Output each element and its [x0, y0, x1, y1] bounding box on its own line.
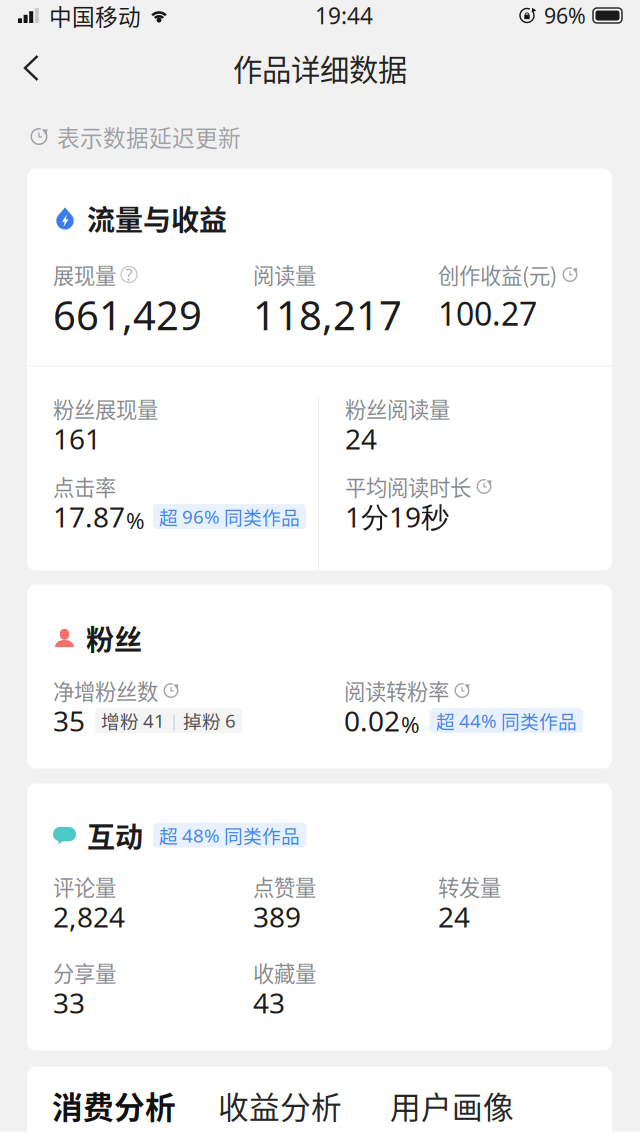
staticText: |	[170, 711, 178, 731]
staticText: 0.02	[344, 701, 400, 740]
staticText: 超	[159, 503, 182, 530]
button[interactable]: 消费分析	[27, 1069, 197, 1138]
staticText: 互动	[87, 815, 143, 855]
staticText: 44%	[459, 708, 497, 733]
staticText: 表示数据延迟更新	[57, 120, 241, 153]
staticText: 389	[253, 897, 301, 936]
staticText: 阅读转粉率	[344, 675, 449, 706]
staticText: 17.87	[53, 497, 125, 536]
staticText: 24	[345, 419, 377, 458]
staticText: 流量与收益	[87, 198, 227, 238]
staticText: 评论量	[53, 871, 116, 902]
staticText: 48%	[182, 822, 220, 848]
staticText: %	[401, 709, 420, 740]
staticText: 19:44	[315, 0, 373, 31]
staticText: 粉丝展现量	[53, 393, 158, 424]
staticText: 1分19秒	[345, 497, 449, 536]
staticText: 点击率	[53, 471, 116, 502]
staticText: 增粉	[101, 707, 143, 734]
staticText: 中国移动	[49, 0, 141, 32]
staticText: 41	[143, 708, 165, 733]
staticText: 同类作品	[220, 822, 300, 849]
staticText: 用户画像	[390, 1083, 514, 1128]
button[interactable]: 用户画像	[366, 1069, 538, 1138]
staticText: 2,824	[53, 897, 125, 936]
staticText: 点赞量	[253, 871, 316, 902]
staticText: 掉粉	[183, 707, 225, 734]
staticText: 161	[53, 419, 101, 458]
staticText: 超	[159, 822, 182, 849]
staticText: 阅读量	[253, 259, 316, 290]
staticText: 展现量	[53, 259, 116, 290]
staticText: 661,429	[53, 287, 202, 342]
button[interactable]: 收益分析	[197, 1069, 366, 1138]
staticText: 分享量	[53, 957, 116, 988]
staticText: 同类作品	[220, 503, 300, 530]
staticText: 创作收益(元)	[438, 259, 557, 290]
staticText: 100.27	[438, 291, 537, 335]
staticText: %	[126, 505, 145, 536]
staticText: 作品详细数据	[233, 47, 407, 89]
staticText: ?	[125, 264, 132, 285]
button[interactable]: Back	[0, 38, 59, 98]
staticText: 转发量	[438, 871, 501, 902]
staticText: 粉丝	[86, 618, 142, 658]
staticText: 96%	[544, 1, 586, 30]
staticText: 24	[438, 897, 470, 936]
staticText: 收益分析	[218, 1083, 342, 1128]
staticText: 超	[436, 707, 459, 734]
staticText: 43	[253, 983, 285, 1022]
staticText: 96%	[182, 504, 220, 529]
staticText: 净增粉丝数	[53, 675, 158, 706]
staticText: 33	[53, 983, 85, 1022]
staticText: 35	[53, 701, 85, 740]
staticText: 粉丝阅读量	[345, 393, 450, 424]
staticText: 118,217	[253, 287, 402, 342]
staticText: 消费分析	[52, 1083, 176, 1128]
staticText: 收藏量	[253, 957, 316, 988]
staticText: 平均阅读时长	[345, 471, 471, 502]
staticText: 6	[225, 708, 236, 733]
staticText: 同类作品	[497, 707, 577, 734]
